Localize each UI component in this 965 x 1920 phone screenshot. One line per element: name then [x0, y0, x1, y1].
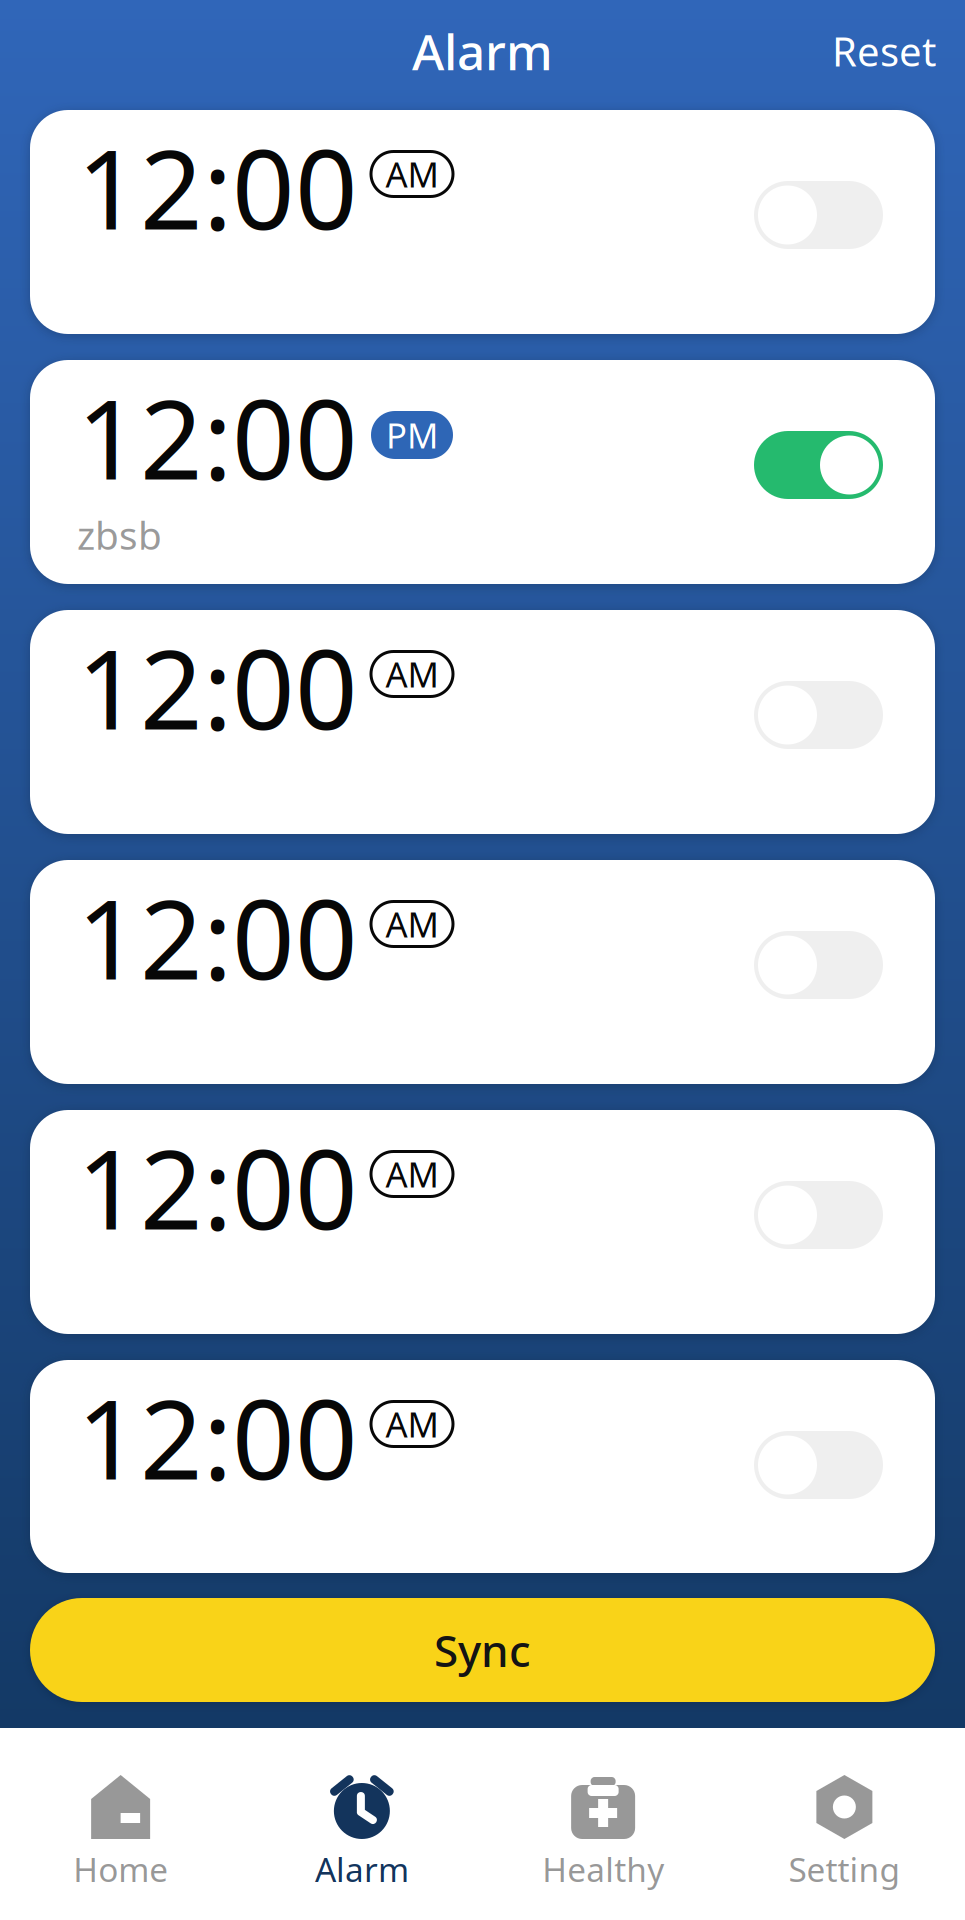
button[interactable]: Home	[0, 1728, 241, 1920]
staticText: PM	[386, 412, 438, 458]
button[interactable]: Reset	[803, 10, 965, 91]
staticText: Alarm	[315, 1847, 409, 1891]
staticText: AM	[385, 151, 438, 197]
button[interactable]: 12:00	[30, 360, 935, 584]
staticText: 12:00	[77, 1114, 358, 1260]
staticText: 12:00	[77, 864, 358, 1010]
staticText: Sync	[434, 1621, 531, 1679]
staticText: AM	[385, 1401, 438, 1447]
staticText: 12:00	[77, 114, 358, 260]
staticText: 12:00	[77, 614, 358, 760]
staticText: Healthy	[542, 1847, 664, 1891]
staticText: Home	[73, 1847, 168, 1891]
staticText: AM	[385, 901, 438, 947]
button[interactable]: Healthy	[482, 1728, 724, 1920]
staticText: Reset	[832, 24, 936, 77]
staticText: zbsb	[77, 509, 162, 560]
button[interactable]: Sync	[30, 1598, 935, 1702]
staticText: Setting	[788, 1847, 900, 1891]
staticText: 12:00	[77, 364, 358, 510]
staticText: AM	[385, 651, 438, 697]
staticText: Alarm	[412, 18, 553, 84]
button[interactable]: Setting	[724, 1728, 965, 1920]
button[interactable]: 12:00	[30, 110, 935, 334]
button[interactable]: Alarm	[241, 1728, 482, 1920]
button[interactable]: 12:00	[30, 1360, 935, 1573]
staticText: AM	[385, 1151, 438, 1197]
button[interactable]: 12:00	[30, 610, 935, 834]
button[interactable]: 12:00	[30, 860, 935, 1084]
button[interactable]: 12:00	[30, 1110, 935, 1334]
staticText: 12:00	[77, 1364, 358, 1510]
